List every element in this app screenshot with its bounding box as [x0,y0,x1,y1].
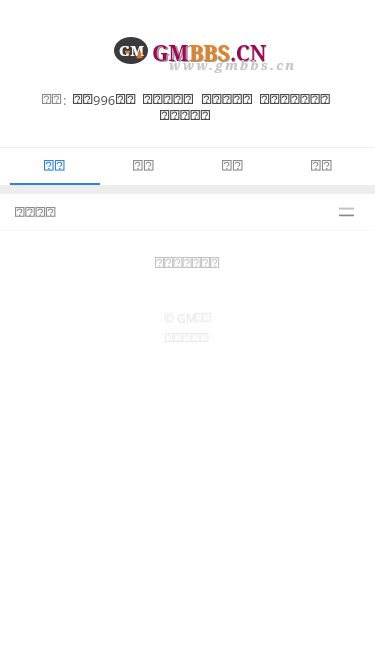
button[interactable] [188,148,277,183]
button[interactable] [10,148,99,183]
button[interactable]: More [0,194,375,230]
staticText: GM [119,40,144,60]
staticText: GM [152,39,189,68]
button[interactable] [277,148,366,183]
staticText: BBS [189,39,230,68]
staticText: .CN [230,39,267,68]
staticText: www.gmbbs.cn [169,56,297,74]
staticText: GMBBS.CN [154,40,267,69]
other: More [339,207,355,217]
staticText: 996 [93,91,116,109]
staticText: : [63,91,67,109]
button[interactable] [99,148,188,183]
staticText: © GM [164,310,197,326]
